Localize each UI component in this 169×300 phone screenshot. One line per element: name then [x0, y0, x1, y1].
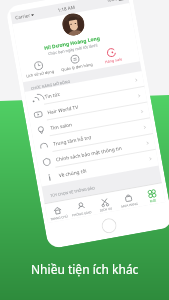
button[interactable]: Chính sách bảo mật thông tin: [36, 134, 156, 171]
staticText: Quản lý đơn hàng: [61, 62, 93, 72]
staticText: Lịch sử sử dụng: [25, 68, 55, 79]
button[interactable]: Tìm salon: [30, 102, 150, 139]
staticText: DỊCH VỤ: [99, 206, 113, 213]
staticText: 1:18 AM: [57, 4, 76, 13]
staticText: PHÒNG GIAO: [72, 210, 92, 218]
staticText: Tin tức: [44, 91, 61, 100]
staticText: Nhiều tiện ích khác: [31, 261, 139, 277]
button[interactable]: Trung tâm hỗ trợ: [33, 118, 153, 155]
staticText: Hàng sale: [104, 56, 123, 64]
staticText: Trung tâm hỗ trợ: [53, 134, 92, 148]
staticText: 100%: [106, 0, 118, 4]
button[interactable]: MỚI: [139, 186, 165, 206]
button[interactable]: Hair World TV: [27, 87, 147, 124]
staticText: Tìm salon: [50, 121, 73, 132]
button[interactable]: Quản lý đơn hàng: [56, 51, 95, 73]
button[interactable]: Về chúng tôi: [39, 150, 159, 187]
staticText: Về chúng tôi: [58, 167, 87, 179]
staticText: MUA HÀNG: [121, 202, 138, 209]
button[interactable]: Lịch sử sử dụng: [20, 58, 59, 79]
staticText: Hair World TV: [47, 104, 79, 116]
button[interactable]: PHÒNG GIAO: [68, 199, 94, 219]
staticText: MỚI: [150, 198, 157, 204]
staticText: Chúc bạn ngày mới tốt lành!: [48, 42, 99, 56]
button[interactable]: Hàng sale: [92, 45, 131, 66]
button[interactable]: DỊCH VỤ: [91, 195, 118, 215]
button[interactable]: Tin tức: [25, 71, 145, 108]
staticText: TRANG CHỦ: [50, 214, 69, 221]
button[interactable]: TRANG CHỦ: [45, 203, 71, 223]
staticText: Carrier: [15, 12, 30, 21]
button[interactable]: MUA HÀNG: [115, 190, 142, 210]
staticText: TÙY CHỌN VỀ THÔNG BÁO: [50, 185, 96, 198]
staticText: Hi! Dương Hoàng Long: [43, 35, 101, 52]
staticText: Chính sách bảo mật thông tin: [55, 145, 123, 164]
staticText: CHỨC NĂNG MỞ RỘNG: [31, 79, 71, 91]
